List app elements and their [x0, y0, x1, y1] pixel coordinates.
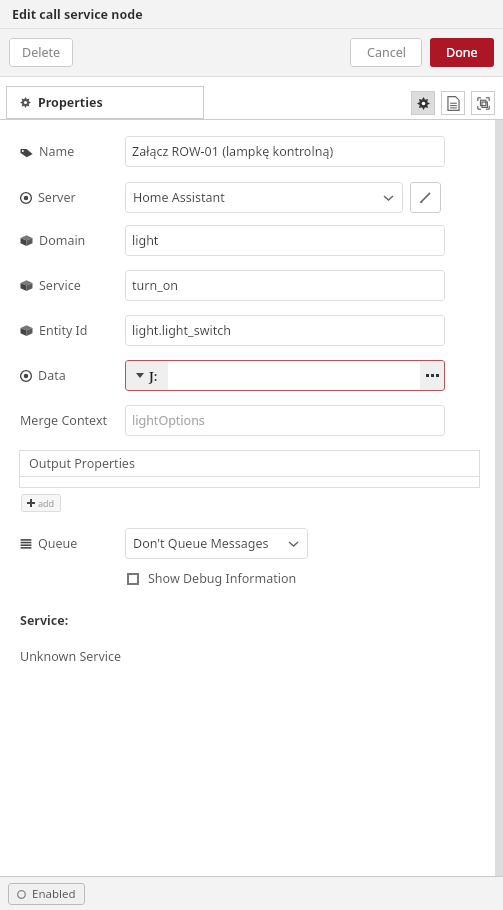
staticText: light.light_switch [132, 322, 231, 339]
staticText: Name [39, 143, 75, 160]
staticText: Domain [39, 232, 86, 249]
staticText: Don't Queue Messages [133, 535, 269, 552]
button[interactable]: lightOptions [125, 405, 445, 436]
button[interactable]: Enabled [8, 883, 85, 905]
button[interactable]: Done [430, 38, 494, 67]
staticText: Merge Context [20, 412, 108, 429]
button[interactable]: Show Debug Information [127, 570, 297, 587]
button[interactable]: Expand editor [420, 361, 445, 390]
staticText: add [38, 497, 55, 509]
staticText: Data [38, 367, 66, 384]
button[interactable]: add [21, 494, 61, 512]
staticText: Service: [20, 612, 69, 629]
button[interactable]: Edit server [410, 182, 441, 213]
staticText: light [132, 232, 159, 249]
staticText: Output Properties [29, 455, 135, 472]
button[interactable]: Properties settings [411, 91, 435, 115]
button[interactable]: Załącz ROW-01 (lampkę kontrolną) [125, 136, 445, 167]
staticText: turn_on [132, 277, 178, 294]
button[interactable]: J: [125, 360, 445, 391]
button[interactable]: J: [125, 361, 168, 390]
staticText: Delete [22, 44, 61, 61]
button[interactable]: light.light_switch [125, 315, 445, 346]
staticText: Cancel [367, 44, 406, 61]
staticText: lightOptions [132, 412, 205, 429]
staticText: Service [39, 277, 81, 294]
staticText: J: [149, 368, 158, 384]
button[interactable]: light [125, 225, 445, 256]
button[interactable]: Description [441, 91, 465, 115]
button[interactable]: Home Assistant [125, 182, 403, 213]
staticText: Show Debug Information [148, 570, 297, 587]
staticText: Edit call service node [12, 6, 143, 23]
button[interactable]: Delete [9, 38, 73, 67]
staticText: Properties [38, 94, 103, 111]
button[interactable]: Don't Queue Messages [125, 528, 308, 559]
staticText: Enabled [32, 886, 76, 902]
staticText: Entity Id [39, 322, 88, 339]
staticText: Załącz ROW-01 (lampkę kontrolną) [132, 143, 334, 160]
button[interactable]: Properties [6, 86, 204, 119]
staticText: Done [446, 44, 478, 61]
staticText: Queue [38, 535, 78, 552]
staticText: Unknown Service [20, 648, 122, 665]
button[interactable]: Cancel [350, 38, 422, 67]
button[interactable]: turn_on [125, 270, 445, 301]
staticText: Home Assistant [133, 189, 225, 206]
staticText: Server [38, 189, 76, 206]
button[interactable]: Appearance [471, 91, 495, 115]
